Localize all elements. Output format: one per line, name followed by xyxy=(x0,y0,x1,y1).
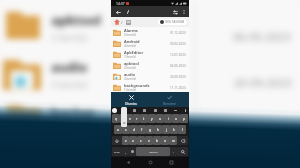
staticText: GBoard xyxy=(149,150,158,153)
staticText: h xyxy=(157,128,159,132)
button[interactable]: s xyxy=(122,125,130,134)
button[interactable]: Space xyxy=(136,147,170,156)
staticText: Dismiss xyxy=(125,101,137,105)
button[interactable]: h xyxy=(154,125,162,134)
staticText: k xyxy=(173,128,175,132)
staticText: d xyxy=(133,128,135,132)
staticText: u xyxy=(159,117,161,121)
button[interactable]: , xyxy=(122,147,129,156)
button[interactable]: backgrounds xyxy=(111,82,189,93)
button[interactable]: 93% 58.69GB xyxy=(158,19,187,25)
staticText: 06-05-2023 xyxy=(233,29,291,44)
button[interactable]: Home xyxy=(146,158,155,167)
staticText: audio xyxy=(51,58,88,76)
button[interactable]: b xyxy=(153,136,161,145)
staticText: 2 item(s) xyxy=(51,31,88,43)
button[interactable]: Home xyxy=(113,18,121,26)
staticText: 13-07-2023 xyxy=(170,53,186,57)
staticText: / xyxy=(121,20,123,25)
button[interactable]: a xyxy=(114,125,122,134)
button[interactable]: Back xyxy=(113,7,123,17)
staticText: 14:37 xyxy=(116,1,125,6)
button[interactable]: z xyxy=(122,136,129,145)
staticText: l xyxy=(182,128,183,132)
button[interactable]: Backspace xyxy=(177,136,188,145)
staticText: 93% 58.69GB xyxy=(165,20,185,24)
button[interactable]: Rename xyxy=(150,92,189,107)
button[interactable]: Android xyxy=(111,38,189,49)
button[interactable]: ApkEditor xyxy=(111,49,189,60)
button[interactable]: Tool xyxy=(163,108,168,113)
button[interactable]: f xyxy=(138,125,146,134)
staticText: / xyxy=(127,8,130,15)
staticText: 20-09-2023 xyxy=(170,75,186,79)
button[interactable]: Tool xyxy=(132,108,137,113)
staticText: v xyxy=(148,139,150,143)
button[interactable]: l xyxy=(178,125,186,134)
button[interactable]: e xyxy=(126,114,133,123)
button[interactable]: Tool xyxy=(122,108,127,113)
button[interactable]: audio xyxy=(111,71,189,82)
staticText: 09-02-2023 xyxy=(170,42,186,46)
staticText: 06-05-2023 xyxy=(170,64,186,68)
button[interactable]: t xyxy=(140,114,148,123)
button[interactable]: Tool xyxy=(153,108,158,113)
button[interactable]: u xyxy=(156,114,164,123)
button[interactable]: d xyxy=(130,125,138,134)
button[interactable]: Search xyxy=(177,147,188,156)
button[interactable]: Internal storage xyxy=(124,18,132,26)
button[interactable]: apktool xyxy=(111,60,189,71)
button[interactable]: Back xyxy=(124,158,133,167)
button[interactable]: p xyxy=(180,114,188,123)
staticText: x xyxy=(132,139,134,143)
button[interactable]: m xyxy=(169,136,177,145)
button[interactable]: k xyxy=(170,125,178,134)
staticText: a xyxy=(117,128,119,132)
staticText: apktool xyxy=(51,11,101,29)
button[interactable]: More options xyxy=(180,8,188,16)
button[interactable]: ?123 xyxy=(112,147,122,156)
button[interactable]: v xyxy=(145,136,153,145)
staticText: o xyxy=(175,117,177,121)
staticText: m xyxy=(172,139,175,143)
staticText: p xyxy=(183,117,185,121)
button[interactable]: y xyxy=(148,114,156,123)
staticText: j xyxy=(166,128,167,132)
staticText: y xyxy=(151,117,153,121)
button[interactable]: Emoji xyxy=(129,147,136,156)
button[interactable]: g xyxy=(146,125,154,134)
staticText: 01-12-2023 xyxy=(170,31,186,35)
button[interactable]: o xyxy=(172,114,180,123)
button[interactable]: Google xyxy=(112,108,117,113)
button[interactable]: Sort xyxy=(170,7,180,17)
button[interactable]: Voice input xyxy=(183,108,188,113)
staticText: n xyxy=(164,139,166,143)
staticText: q xyxy=(115,117,117,121)
button[interactable]: n xyxy=(161,136,169,145)
staticText: c xyxy=(140,139,142,143)
button[interactable]: c xyxy=(137,136,145,145)
staticText: 11-11-2023 xyxy=(170,86,186,90)
button[interactable]: r xyxy=(133,114,140,123)
staticText: 4 item(s) xyxy=(51,78,88,90)
button[interactable]: i xyxy=(164,114,172,123)
button[interactable]: j xyxy=(162,125,170,134)
staticText: g xyxy=(149,128,151,132)
button[interactable]: Dismiss xyxy=(111,92,150,107)
staticText: s xyxy=(125,128,127,132)
staticText: i xyxy=(168,117,169,121)
staticText: e xyxy=(129,117,131,121)
button[interactable]: Tool xyxy=(142,108,147,113)
button[interactable]: Alarms xyxy=(111,27,189,38)
button[interactable]: Shift xyxy=(112,136,122,145)
button[interactable]: x xyxy=(129,136,137,145)
button[interactable]: q xyxy=(112,114,119,123)
button[interactable]: Collapse xyxy=(173,108,178,113)
button[interactable]: w xyxy=(119,114,126,123)
staticText: 4 item(s) xyxy=(124,44,137,48)
staticText: t xyxy=(143,117,145,121)
staticText: 7 item(s) xyxy=(124,55,137,59)
button[interactable]: . xyxy=(170,147,177,156)
button[interactable]: Recents xyxy=(167,158,176,167)
